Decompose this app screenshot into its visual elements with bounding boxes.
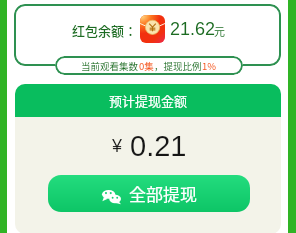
staticText: ，提现比例 (154, 59, 202, 73)
staticText: 预计提现金额 (109, 91, 188, 110)
other: 红包 (140, 15, 165, 43)
staticText: 全部提现 (129, 181, 197, 206)
staticText: ¥ (112, 136, 123, 156)
other: 微信 (102, 190, 121, 204)
staticText: 红包余额： (72, 21, 138, 40)
staticText: 21.62 (170, 19, 216, 39)
staticText: 当前观看集数 (81, 59, 139, 73)
button[interactable]: 当前观看集数 (55, 56, 243, 75)
button[interactable] (14, 4, 281, 66)
staticText: 1% (202, 59, 217, 73)
button[interactable]: 微信 (48, 175, 250, 212)
staticText: 0.21 (130, 130, 187, 162)
staticText: 0集 (139, 59, 154, 73)
staticText: 元 (214, 23, 225, 39)
